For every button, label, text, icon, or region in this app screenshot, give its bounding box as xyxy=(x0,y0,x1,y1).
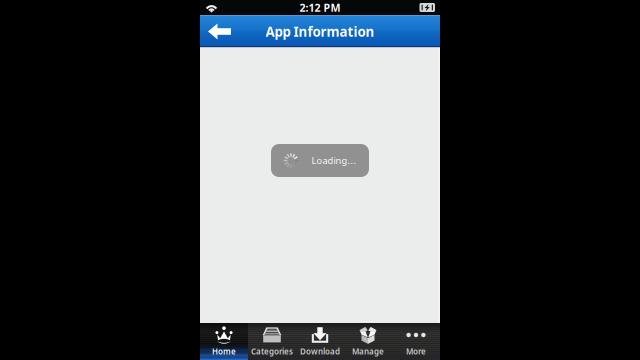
staticText: App Information xyxy=(265,23,374,40)
button[interactable]: Home xyxy=(200,323,248,360)
staticText: Manage xyxy=(352,346,384,357)
staticText: Loading... xyxy=(311,154,356,167)
button[interactable]: Back xyxy=(200,16,239,47)
button[interactable]: Download xyxy=(296,323,344,360)
staticText: Categories xyxy=(251,346,293,357)
staticText: More xyxy=(406,346,426,357)
staticText: Home xyxy=(212,346,236,357)
staticText: Download xyxy=(300,346,340,357)
button[interactable]: More xyxy=(392,323,440,360)
button[interactable]: Categories xyxy=(248,323,296,360)
button[interactable]: Manage xyxy=(344,323,392,360)
staticText: 2:12 PM xyxy=(299,0,340,15)
